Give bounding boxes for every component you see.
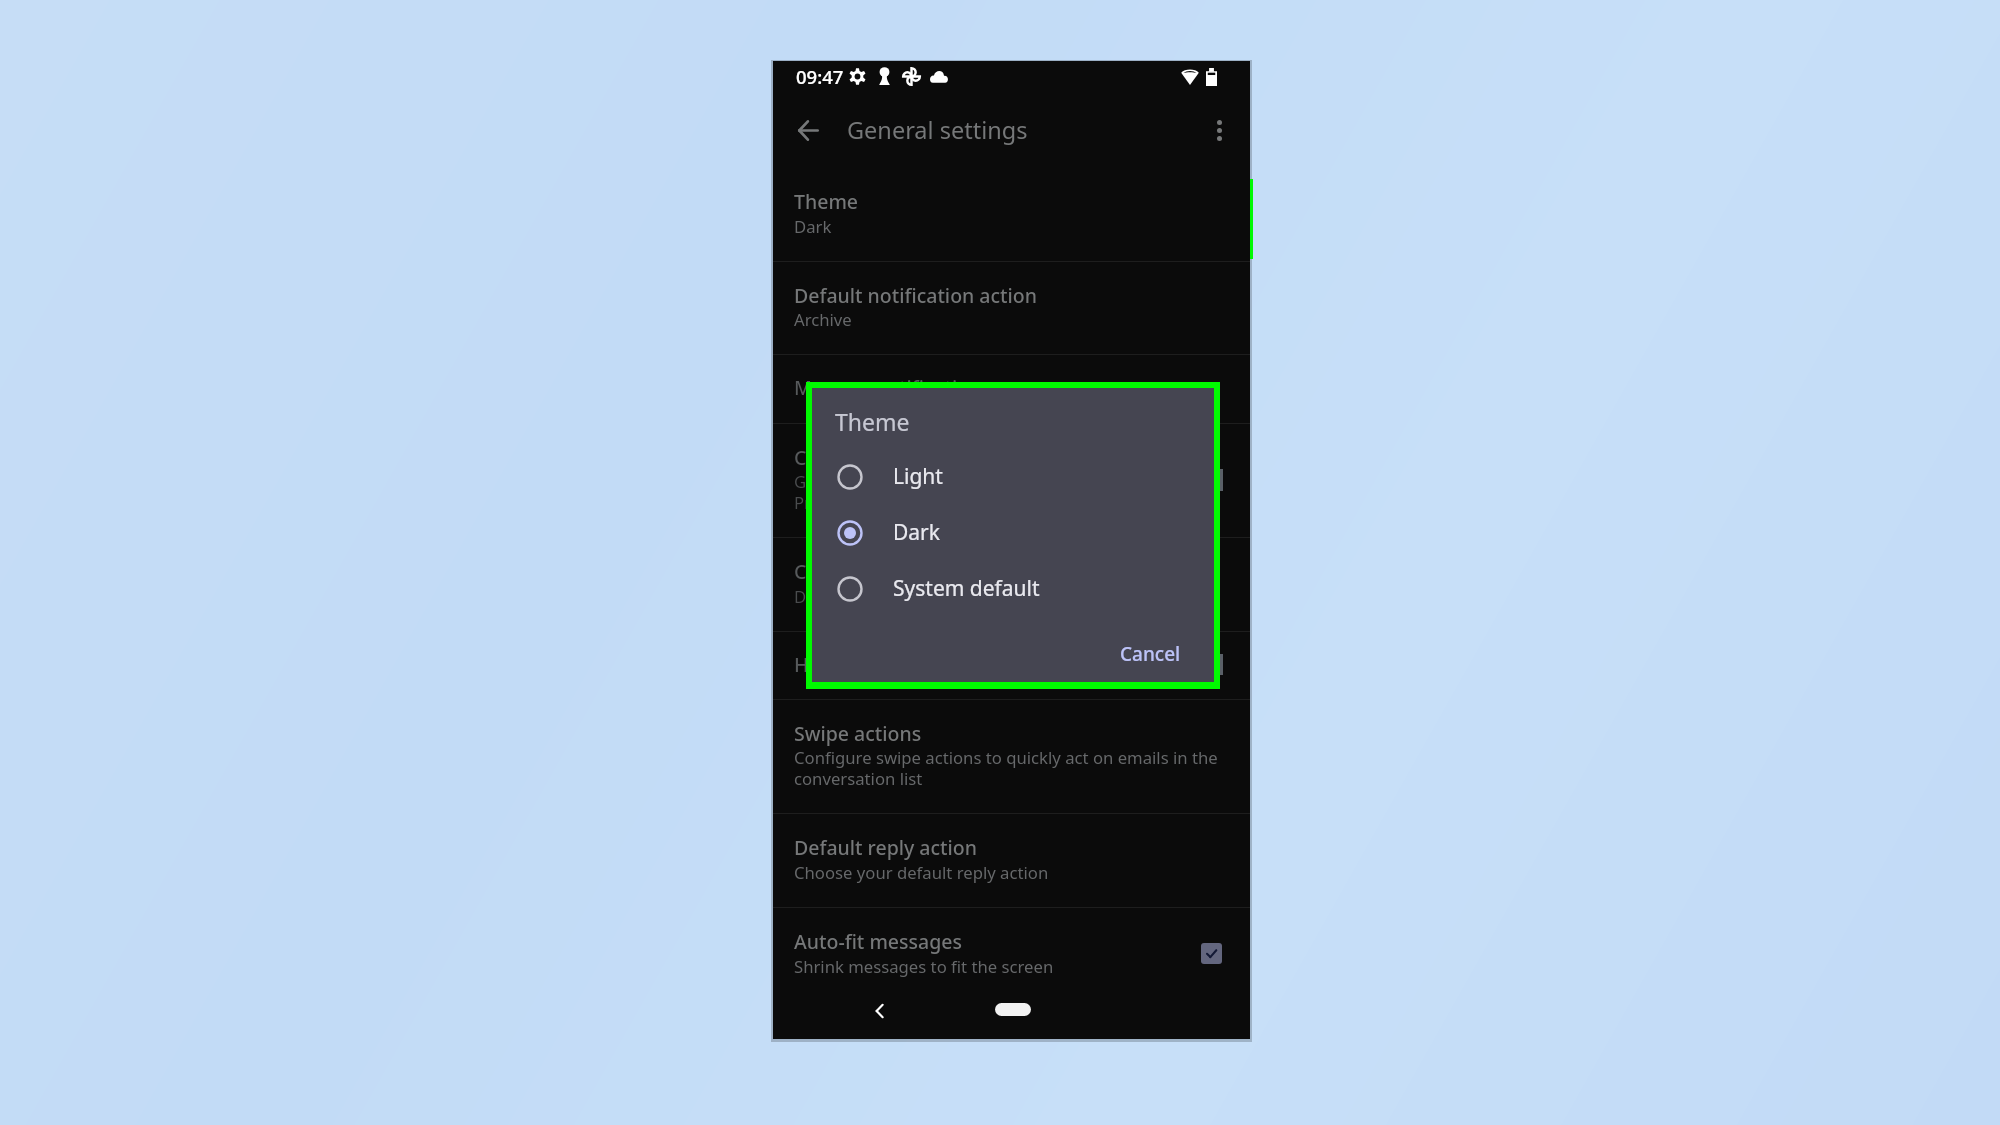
button[interactable]: Default notification action — [773, 262, 1250, 354]
button[interactable]: Hide checkboxes — [773, 632, 1250, 699]
button[interactable]: Conversation list density — [773, 424, 1250, 537]
button[interactable]: Back — [861, 992, 898, 1029]
staticText: Dark — [893, 518, 940, 547]
staticText: Configure swipe actions to quickly act o… — [794, 746, 1218, 769]
staticText: Hide checkboxes — [794, 651, 951, 678]
staticText: Conversation actions — [794, 558, 990, 585]
staticText: Light — [893, 462, 943, 491]
button[interactable]: Conversation actions — [773, 538, 1250, 631]
staticText: Cancel — [1120, 641, 1181, 667]
button[interactable]: Cancel — [1108, 636, 1192, 672]
staticText: Archive — [794, 308, 852, 331]
button[interactable]: Manage notifications — [773, 355, 1250, 423]
staticText: Auto-fit messages — [794, 928, 962, 955]
button[interactable]: Home — [995, 1003, 1031, 1016]
button[interactable]: Auto-fit messages — [773, 908, 1250, 1001]
button[interactable]: Navigate up — [788, 110, 829, 151]
staticText: General settings — [847, 114, 1028, 146]
staticText: Swipe actions — [794, 720, 922, 747]
staticText: conversation list — [794, 767, 923, 790]
staticText: Gmail default — [794, 470, 900, 493]
button[interactable]: Light — [812, 449, 1214, 505]
staticText: Choose your default reply action — [794, 861, 1049, 884]
button[interactable]: Dark — [812, 505, 1214, 561]
staticText: Default notification action — [794, 282, 1037, 309]
staticText: Manage notifications — [794, 374, 991, 401]
staticText: Dark — [794, 215, 832, 238]
button[interactable]: Default reply action — [773, 814, 1250, 907]
button[interactable]: System default — [812, 561, 1214, 617]
button[interactable]: Swipe actions — [773, 700, 1250, 813]
button[interactable]: More options — [1199, 110, 1239, 150]
staticText: System default — [893, 574, 1040, 603]
staticText: Shrink messages to fit the screen — [794, 955, 1054, 978]
staticText: Theme — [835, 406, 910, 437]
staticText: Theme — [794, 188, 859, 215]
staticText: 09:47 — [796, 64, 844, 89]
button[interactable] — [1201, 943, 1222, 964]
staticText: Default — [794, 585, 852, 608]
staticText: Conversation list density — [794, 444, 1024, 471]
button[interactable]: Theme — [773, 168, 1250, 261]
staticText: Default reply action — [794, 834, 977, 861]
staticText: Preview lines: 2 — [794, 491, 914, 514]
